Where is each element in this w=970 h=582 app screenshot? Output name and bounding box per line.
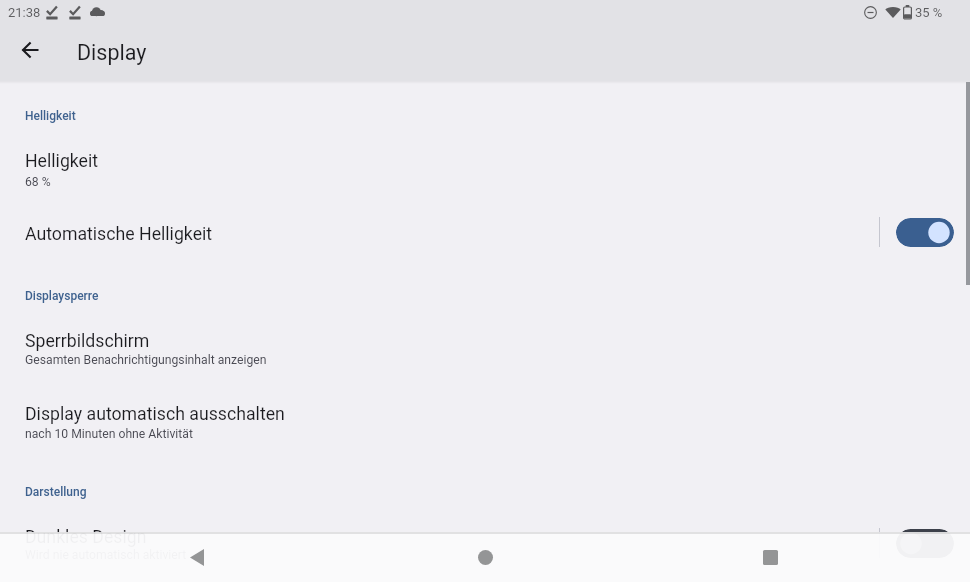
staticText: 68 %	[25, 175, 51, 189]
button[interactable]: Back	[179, 539, 215, 575]
button[interactable]: Back	[11, 31, 49, 69]
staticText: Sperrbildschirm	[25, 331, 150, 352]
button[interactable]: Home	[467, 539, 503, 575]
button[interactable]: Recent apps	[752, 539, 788, 575]
staticText: Display	[77, 40, 147, 65]
staticText: 35 %	[915, 5, 943, 20]
staticText: Helligkeit	[25, 109, 76, 123]
button[interactable]: Helligkeit	[0, 136, 970, 194]
staticText: Displaysperre	[25, 289, 99, 303]
staticText: Dunkles Design	[25, 527, 147, 548]
button[interactable]: Dunkles Design	[896, 529, 954, 558]
staticText: nach 10 Minuten ohne Aktivität	[25, 427, 193, 441]
button[interactable]: Sperrbildschirm	[0, 318, 970, 376]
staticText: Display automatisch ausschalten	[25, 404, 285, 425]
staticText: 21:38	[8, 5, 41, 20]
staticText: Darstellung	[25, 485, 87, 499]
button[interactable]: Dunkles Design	[0, 514, 970, 572]
staticText: Gesamten Benachrichtigungsinhalt anzeige…	[25, 353, 267, 367]
button[interactable]: Automatische Helligkeit	[0, 204, 970, 262]
staticText: Automatische Helligkeit	[25, 224, 213, 245]
staticText: Helligkeit	[25, 151, 99, 172]
button[interactable]: Display automatisch ausschalten	[0, 391, 970, 449]
button[interactable]: Automatische Helligkeit	[896, 218, 954, 247]
